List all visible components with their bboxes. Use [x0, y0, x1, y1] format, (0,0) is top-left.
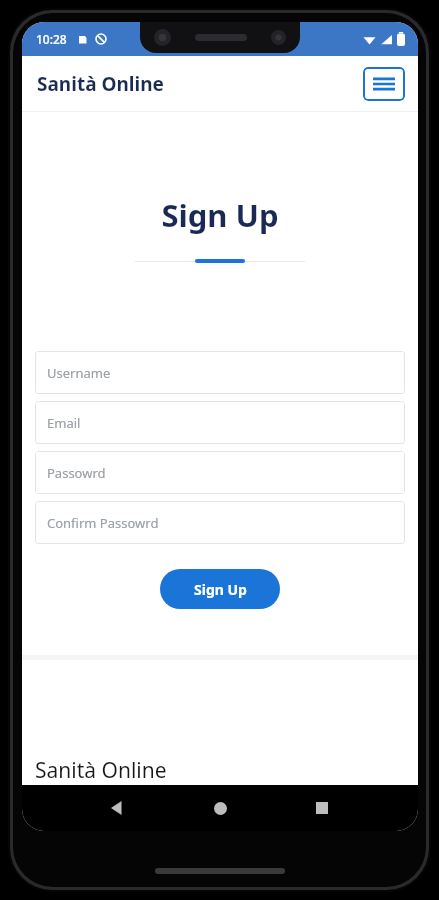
- staticText: Passowrd: [47, 464, 106, 482]
- staticText: Sign Up: [194, 580, 247, 599]
- button[interactable]: Confirm Passowrd: [35, 501, 405, 544]
- staticText: Sanità Online: [35, 756, 167, 785]
- staticText: Username: [47, 364, 111, 382]
- button[interactable]: Username: [35, 351, 405, 394]
- button[interactable]: Home: [202, 790, 238, 826]
- button[interactable]: Recent apps: [304, 790, 340, 826]
- button[interactable]: Open navigation menu: [363, 67, 405, 101]
- staticText: Sign Up: [161, 194, 279, 236]
- staticText: Email: [47, 414, 81, 432]
- button[interactable]: Passowrd: [35, 451, 405, 494]
- staticText: Sanità Online: [37, 71, 164, 97]
- button[interactable]: Sign Up: [160, 569, 280, 609]
- staticText: 10:28: [36, 31, 67, 47]
- button[interactable]: Email: [35, 401, 405, 444]
- button[interactable]: Back: [100, 790, 136, 826]
- button[interactable]: Sanità Online: [35, 69, 166, 99]
- staticText: Confirm Passowrd: [47, 514, 159, 532]
